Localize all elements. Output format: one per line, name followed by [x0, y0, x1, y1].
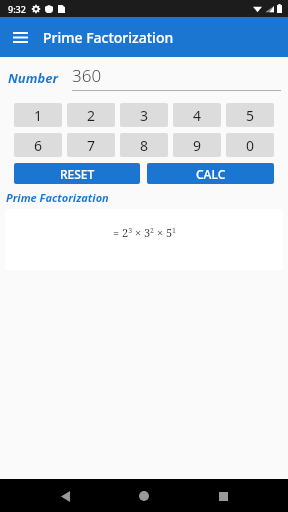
button[interactable]: RESET — [14, 163, 140, 184]
staticText: 8 — [140, 136, 149, 155]
staticText: Prime Factorization — [6, 190, 109, 205]
staticText: 3 — [140, 106, 149, 125]
button[interactable]: 7 — [67, 133, 115, 157]
staticText: 7 — [87, 136, 96, 155]
staticText: Number — [8, 69, 58, 87]
button[interactable]: 6 — [14, 133, 62, 157]
button[interactable]: CALC — [147, 163, 274, 184]
button[interactable]: 9 — [173, 133, 221, 157]
button[interactable]: 2 — [67, 103, 115, 127]
button[interactable]: 5 — [226, 103, 274, 127]
button[interactable]: 8 — [120, 133, 168, 157]
button[interactable]: 0 — [226, 133, 274, 157]
staticText: 5 — [246, 106, 255, 125]
staticText: 0 — [246, 136, 255, 155]
staticText: 1 — [34, 106, 43, 125]
button[interactable]: Recent apps — [210, 483, 236, 509]
staticText: CALC — [196, 166, 226, 182]
staticText: = 23 × 32 × 51 — [113, 225, 176, 240]
staticText: 4 — [193, 106, 202, 125]
button[interactable]: 4 — [173, 103, 221, 127]
button[interactable]: 1 — [14, 103, 62, 127]
button[interactable]: Back — [52, 483, 78, 509]
button[interactable]: Home — [131, 483, 157, 509]
staticText: 360 — [72, 64, 102, 87]
staticText: Prime Factorization — [43, 28, 174, 47]
staticText: 9 — [193, 136, 202, 155]
staticText: 2 — [87, 106, 96, 125]
button[interactable]: Open navigation menu — [8, 25, 32, 49]
staticText: 6 — [34, 136, 43, 155]
staticText: 9:32 — [8, 3, 26, 15]
button[interactable]: 3 — [120, 103, 168, 127]
staticText: RESET — [60, 166, 95, 182]
